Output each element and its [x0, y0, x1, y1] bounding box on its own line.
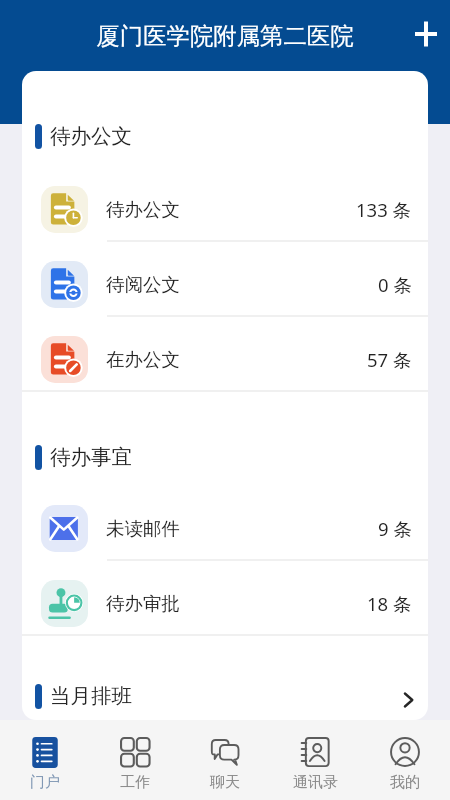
- button[interactable]: 聊天: [180, 720, 270, 800]
- button[interactable]: 我的: [360, 720, 450, 800]
- button[interactable]: 待阅公文: [41, 254, 412, 315]
- button[interactable]: 未读邮件: [41, 498, 412, 559]
- staticText: 18 条: [367, 591, 412, 616]
- staticText: 待办事宜: [50, 444, 412, 470]
- button[interactable]: 在办公文: [41, 329, 412, 390]
- staticText: 我的: [390, 773, 420, 792]
- button[interactable]: 待办公文: [41, 179, 412, 240]
- staticText: 当月排班: [50, 683, 394, 709]
- staticText: 待阅公文: [106, 273, 378, 296]
- staticText: 聊天: [210, 773, 240, 792]
- staticText: 厦门医学院附属第二医院: [0, 21, 450, 50]
- staticText: 门户: [30, 773, 60, 792]
- staticText: 工作: [120, 773, 150, 792]
- button[interactable]: 通讯录: [270, 720, 360, 800]
- button[interactable]: 工作: [90, 720, 180, 800]
- button[interactable]: 待办审批: [41, 573, 412, 634]
- staticText: 待办审批: [106, 592, 367, 615]
- staticText: 未读邮件: [106, 517, 378, 540]
- staticText: 0 条: [378, 272, 412, 297]
- button[interactable]: 当月排班: [35, 683, 412, 709]
- staticText: 待办公文: [50, 123, 412, 149]
- staticText: 待办公文: [106, 198, 356, 221]
- staticText: 133 条: [356, 197, 412, 222]
- button[interactable]: Add: [404, 12, 448, 56]
- staticText: 在办公文: [106, 348, 367, 371]
- staticText: 9 条: [378, 516, 412, 541]
- staticText: 通讯录: [293, 773, 338, 792]
- button[interactable]: 门户: [0, 720, 90, 800]
- staticText: 57 条: [367, 347, 412, 372]
